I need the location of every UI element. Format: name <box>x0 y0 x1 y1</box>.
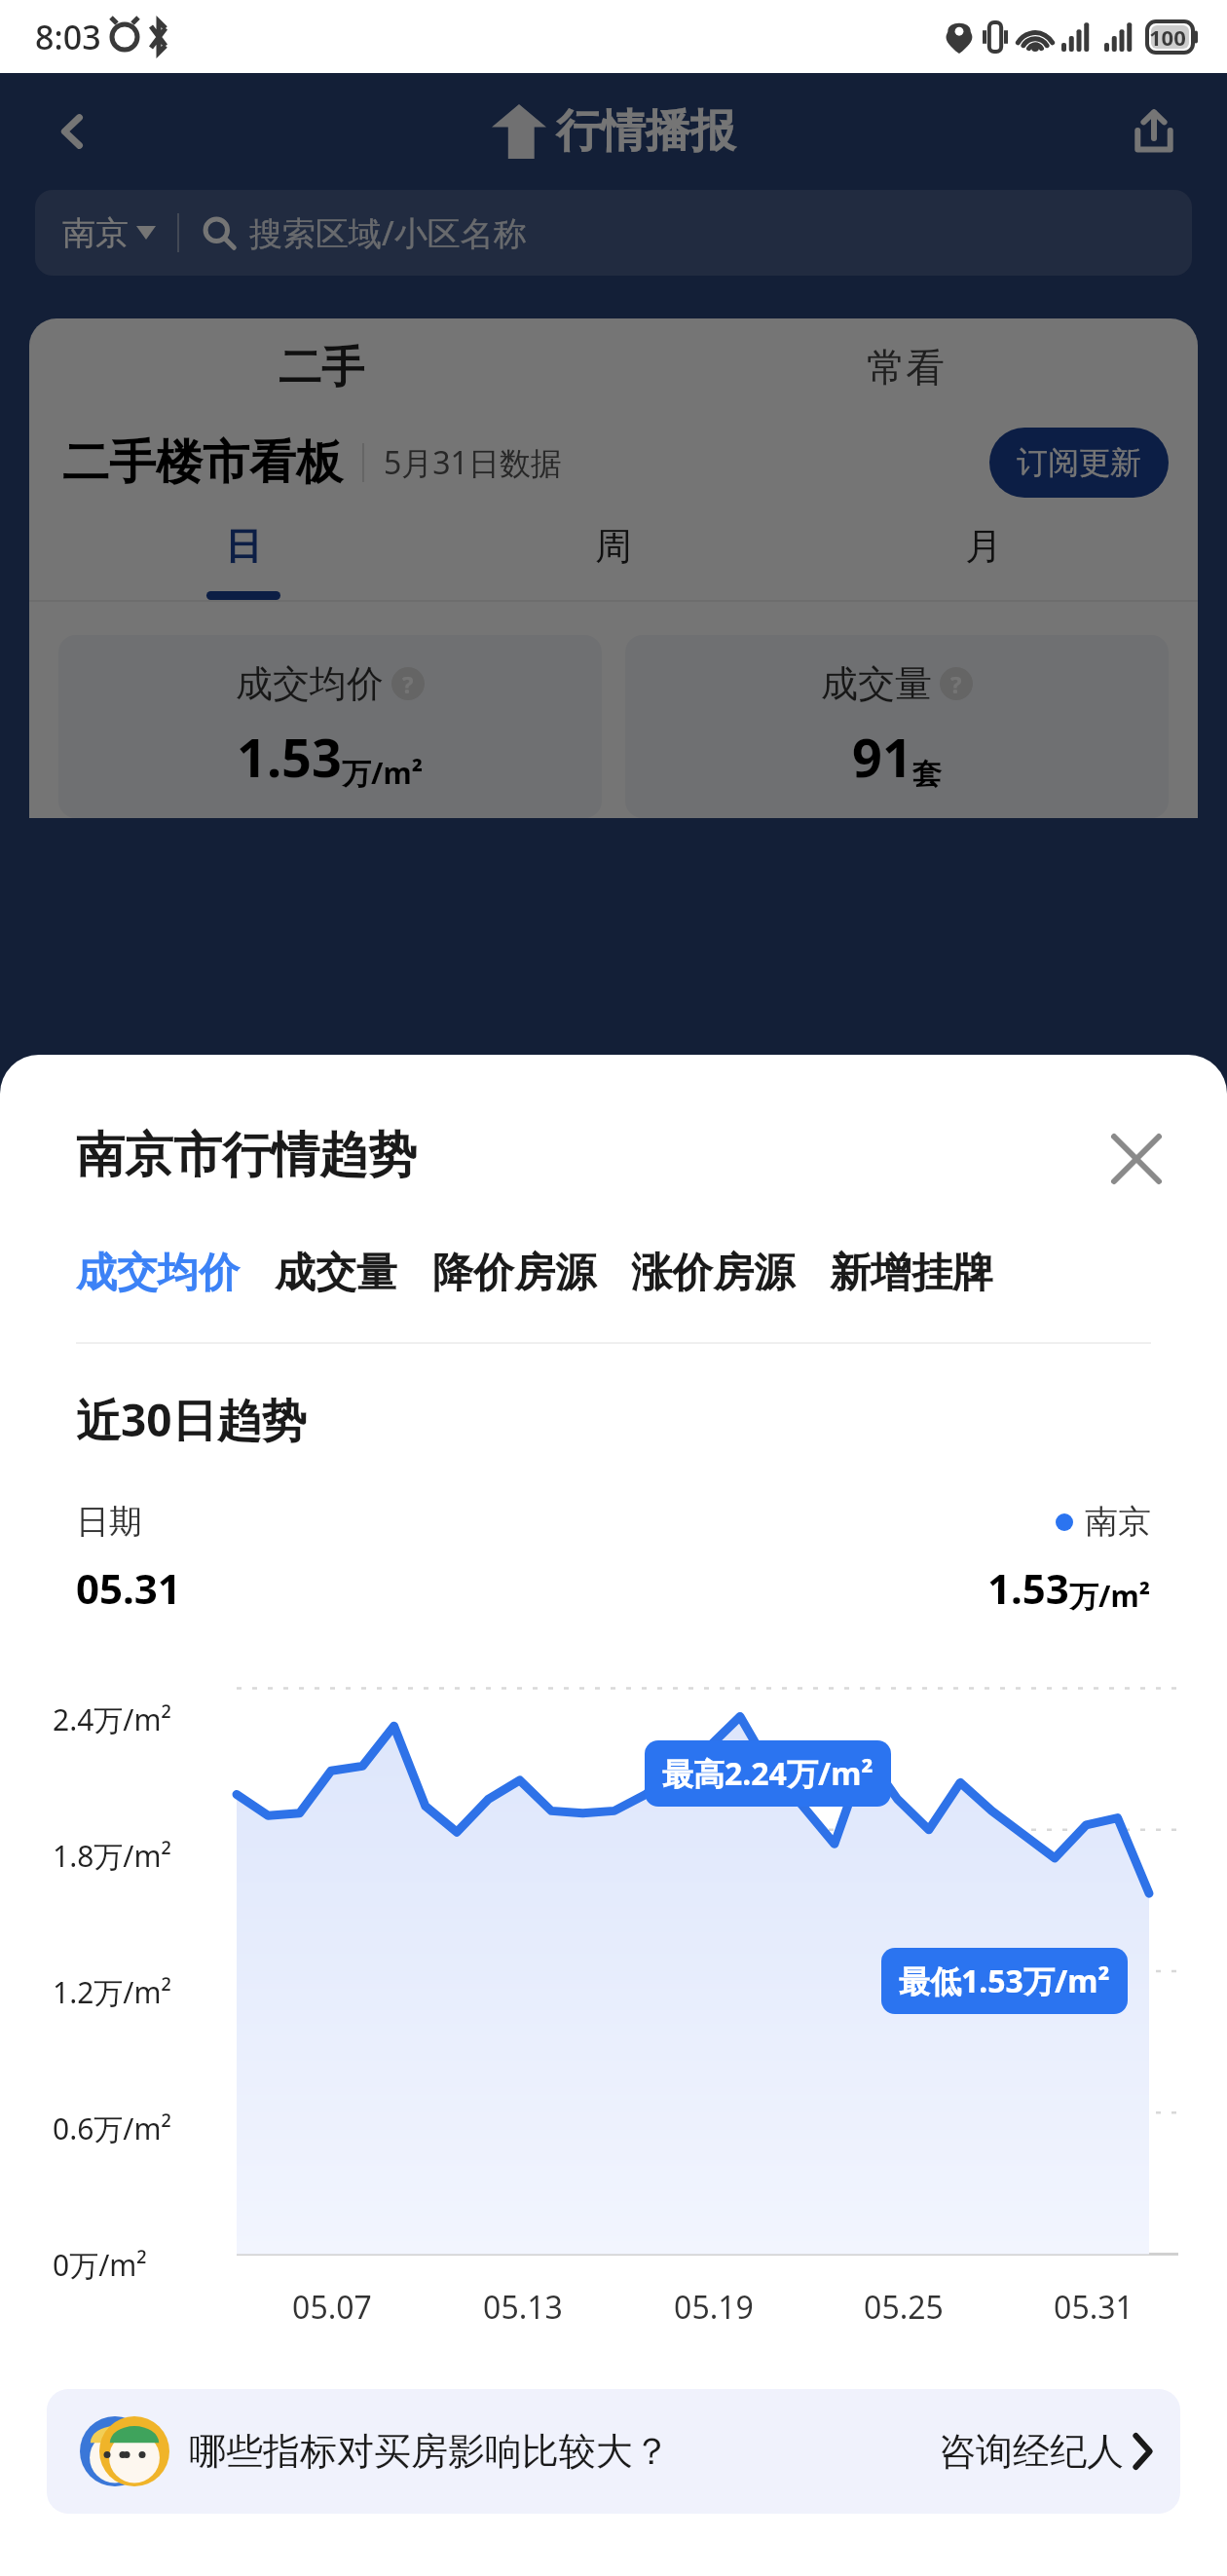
staticText: 南京 <box>62 212 129 254</box>
staticText: 行情播报 <box>556 103 735 160</box>
staticText: 成交量 <box>821 660 932 707</box>
button[interactable]: 周 <box>428 523 799 600</box>
staticText: 哪些指标对买房影响比较大？ <box>189 2428 670 2475</box>
button[interactable]: 订阅更新 <box>989 428 1169 498</box>
button[interactable]: 成交均价 <box>76 1248 275 1299</box>
staticText: 万/m² <box>342 753 424 793</box>
staticText: 二手楼市看板 <box>62 433 343 492</box>
staticText: 1.8万/m² <box>53 1836 172 1876</box>
staticText: 最高2.24万/m² <box>662 1752 874 1795</box>
staticText: 100 <box>1149 22 1186 52</box>
button[interactable]: 南京 <box>35 190 1192 276</box>
staticText: 05.19 <box>674 2286 754 2329</box>
button[interactable]: 二手 <box>29 318 613 416</box>
staticText: 咨询经纪人 <box>939 2428 1124 2475</box>
staticText: 05.07 <box>292 2286 372 2329</box>
staticText: 8:03 <box>35 15 101 59</box>
staticText: 新增挂牌 <box>830 1248 993 1299</box>
staticText: 0万/m² <box>53 2245 147 2285</box>
staticText: 05.25 <box>864 2286 944 2329</box>
staticText: 成交量 <box>275 1248 397 1299</box>
staticText: 最低1.53万/m² <box>899 1960 1110 2002</box>
button[interactable]: Close <box>1102 1125 1171 1193</box>
staticText: 1.53 <box>987 1560 1069 1616</box>
staticText: 周 <box>595 523 632 570</box>
staticText: 2.4万/m² <box>53 1699 172 1739</box>
button[interactable]: Back <box>39 97 107 166</box>
staticText: 常看 <box>867 343 945 392</box>
staticText: 成交均价 <box>76 1248 240 1299</box>
staticText: 套 <box>912 756 942 793</box>
button[interactable]: 常看 <box>613 318 1198 416</box>
staticText: 订阅更新 <box>1017 443 1141 482</box>
staticText: 5月31日数据 <box>384 441 562 484</box>
staticText: 91 <box>852 721 912 793</box>
staticText: 1.2万/m² <box>53 1972 172 2012</box>
button[interactable]: 日 <box>58 523 428 600</box>
staticText: 1.53 <box>237 721 342 793</box>
staticText: 南京市行情趋势 <box>76 1125 417 1186</box>
staticText: 05.31 <box>76 1560 181 1616</box>
button[interactable]: 降价房源 <box>432 1248 631 1299</box>
staticText: 二手 <box>279 341 364 394</box>
staticText: 南京 <box>1085 1501 1151 1543</box>
staticText: 日 <box>225 523 262 570</box>
button[interactable]: 新增挂牌 <box>830 1248 1028 1299</box>
staticText: 日期 <box>76 1501 142 1543</box>
staticText: 成交均价 <box>236 660 384 707</box>
button[interactable]: 成交均价 <box>58 635 602 818</box>
staticText: 月 <box>965 523 1002 570</box>
staticText: ? <box>950 668 962 700</box>
button[interactable]: 月 <box>799 523 1169 600</box>
staticText: 降价房源 <box>432 1248 596 1299</box>
button[interactable]: 涨价房源 <box>631 1248 830 1299</box>
staticText: 万/m² <box>1069 1576 1151 1616</box>
button[interactable]: 成交量 <box>275 1248 432 1299</box>
button[interactable]: 成交量 <box>625 635 1169 818</box>
staticText: 近30日趋势 <box>76 1389 307 1450</box>
staticText: 涨价房源 <box>631 1248 795 1299</box>
button[interactable]: Share <box>1120 97 1188 166</box>
staticText: 0.6万/m² <box>53 2109 172 2148</box>
staticText: ? <box>402 668 414 700</box>
button[interactable]: 哪些指标对买房影响比较大？ <box>47 2389 1180 2514</box>
staticText: 搜索区域/小区名称 <box>249 210 527 255</box>
staticText: 05.13 <box>483 2286 563 2329</box>
staticText: 05.31 <box>1054 2286 1134 2329</box>
